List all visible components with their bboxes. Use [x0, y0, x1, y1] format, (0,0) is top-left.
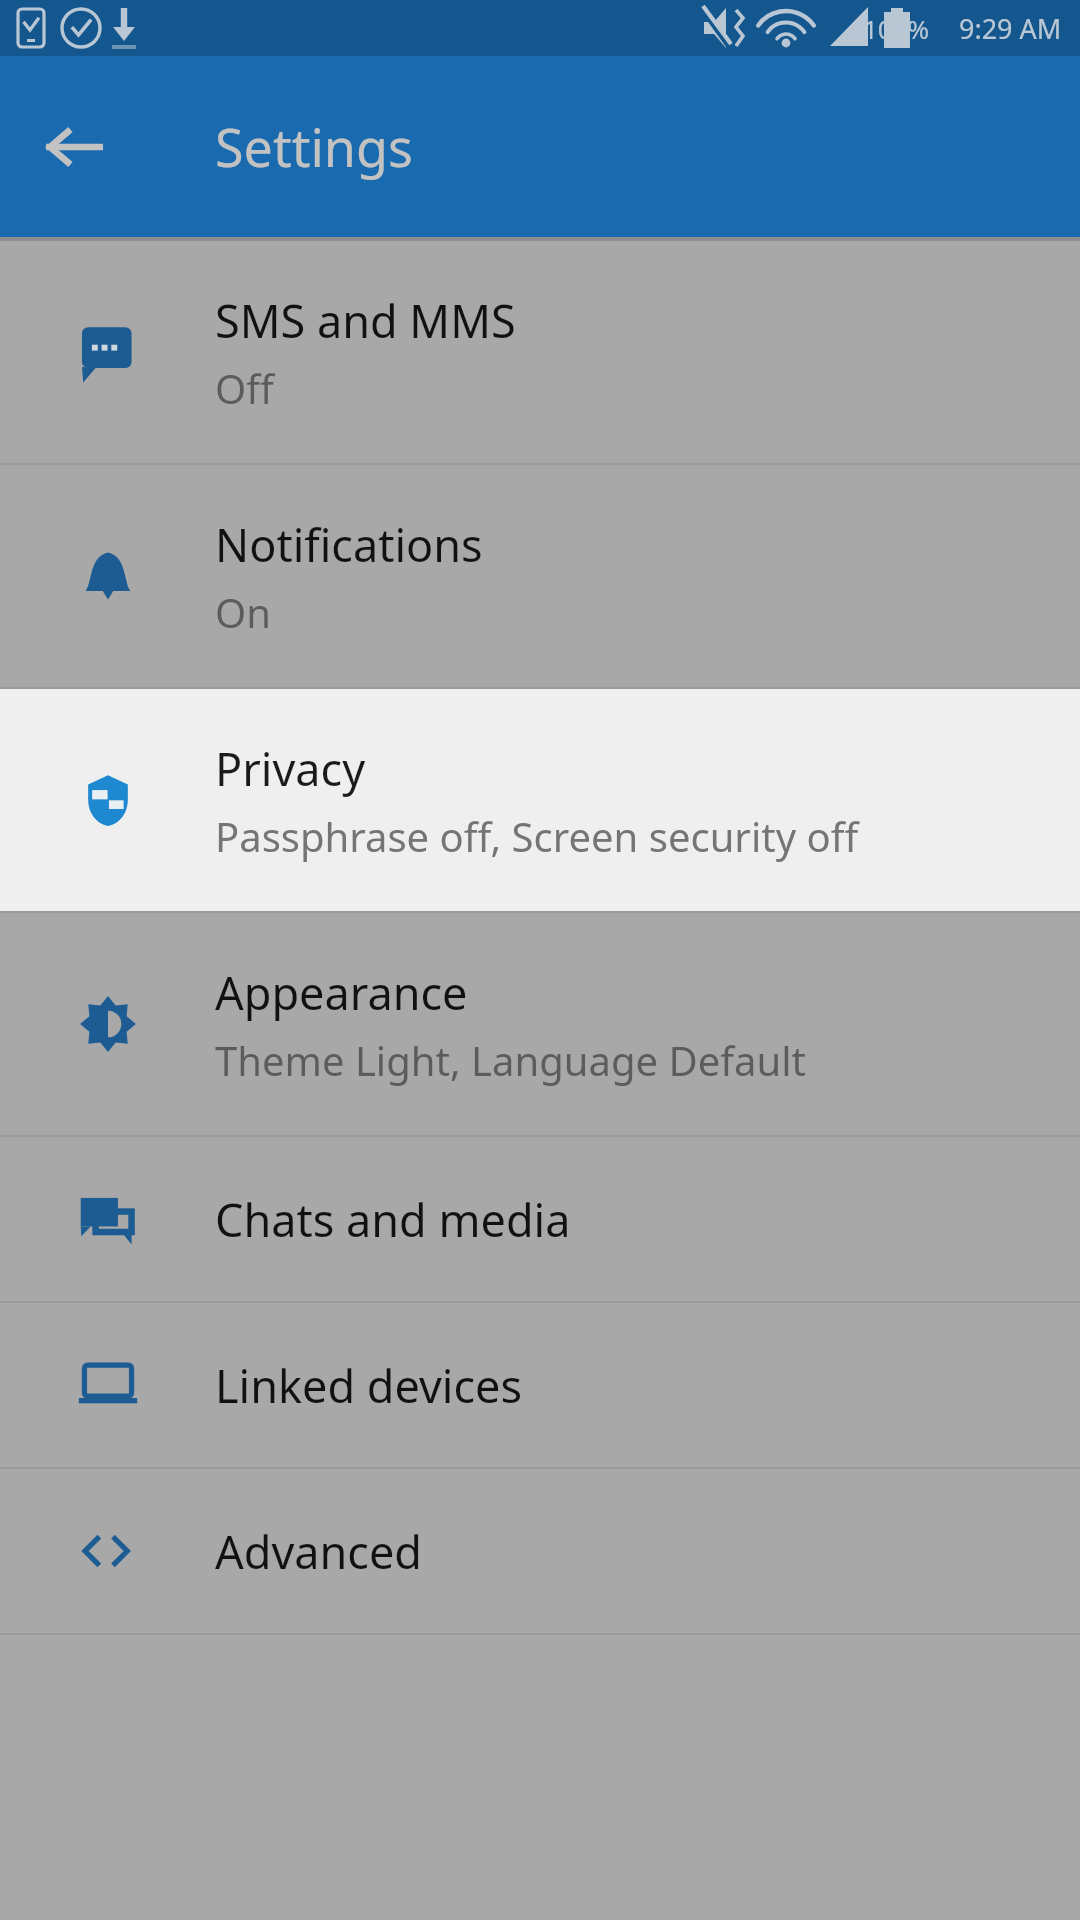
staticText: Privacy — [215, 738, 366, 799]
staticText: Notifications — [215, 514, 483, 575]
button[interactable]: Linked devices — [0, 1303, 1080, 1467]
staticText: On — [215, 585, 271, 639]
staticText: Passphrase off, Screen security off — [215, 809, 859, 863]
button[interactable]: Advanced — [0, 1469, 1080, 1633]
button[interactable]: Appearance — [0, 913, 1080, 1135]
staticText: Advanced — [215, 1521, 423, 1582]
button[interactable]: Privacy — [0, 689, 1080, 911]
button[interactable]: SMS and MMS — [0, 241, 1080, 463]
staticText: 9:29 AM — [959, 10, 1062, 47]
staticText: Off — [215, 361, 274, 415]
staticText: Appearance — [215, 962, 468, 1023]
staticText: Settings — [215, 111, 413, 182]
staticText: Chats and media — [215, 1189, 571, 1250]
button[interactable]: Notifications — [0, 465, 1080, 687]
button[interactable]: Chats and media — [0, 1137, 1080, 1301]
staticText: 100% — [863, 11, 930, 46]
staticText: Theme Light, Language Default — [215, 1033, 806, 1087]
staticText: Linked devices — [215, 1355, 522, 1416]
button[interactable]: Back — [22, 95, 126, 199]
staticText: SMS and MMS — [215, 290, 516, 351]
